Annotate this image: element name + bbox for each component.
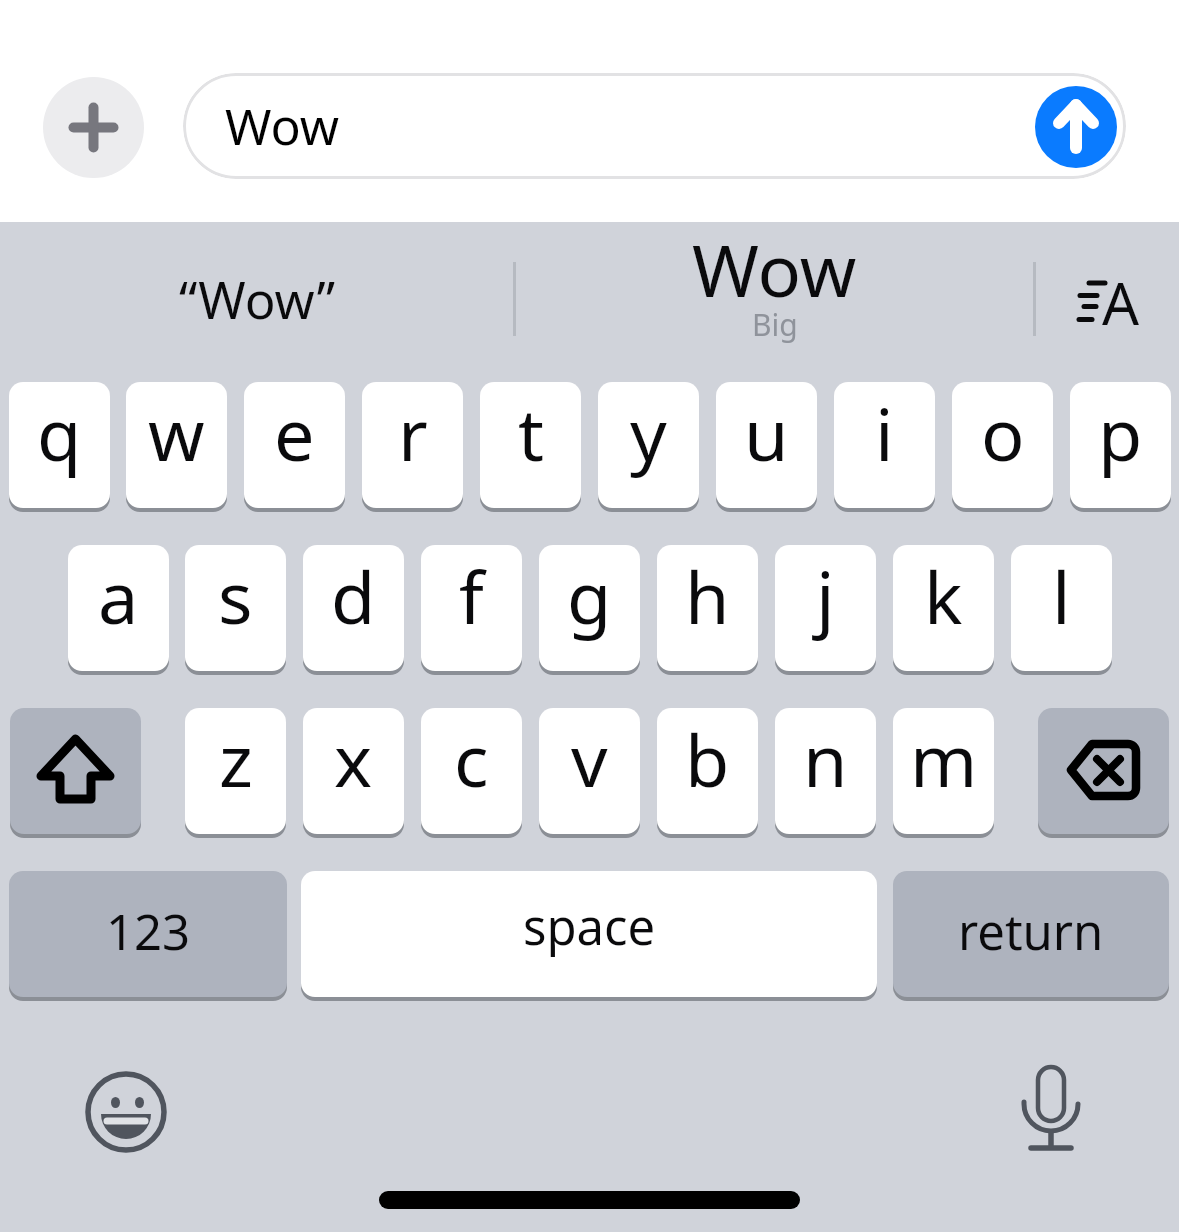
staticText: Wow [692, 220, 857, 318]
button[interactable]: w [126, 382, 227, 508]
staticText: 123 [106, 898, 191, 965]
staticText: Big [752, 304, 798, 345]
staticText: e [274, 384, 315, 482]
staticText: k [924, 547, 963, 645]
staticText: x [334, 710, 373, 808]
staticText: y [630, 384, 667, 482]
button[interactable] [1013, 1058, 1093, 1153]
staticText: m [910, 710, 978, 808]
button[interactable]: c [421, 708, 522, 834]
staticText: p [1098, 384, 1143, 482]
staticText: b [685, 710, 730, 808]
button[interactable]: p [1070, 382, 1171, 508]
staticText: u [744, 384, 789, 482]
button[interactable]: return [893, 871, 1169, 997]
button[interactable] [84, 1070, 168, 1154]
button[interactable]: Wow [183, 73, 1126, 179]
staticText: o [981, 384, 1025, 482]
button[interactable]: v [539, 708, 640, 834]
button[interactable]: 123 [9, 871, 287, 997]
button[interactable]: s [185, 545, 286, 671]
button[interactable]: m [893, 708, 994, 834]
button[interactable]: f [421, 545, 522, 671]
staticText: d [331, 547, 376, 645]
button[interactable]: t [480, 382, 581, 508]
staticText: “Wow” [179, 264, 336, 333]
button[interactable]: g [539, 545, 640, 671]
button[interactable] [1038, 708, 1169, 834]
button[interactable]: j [775, 545, 876, 671]
staticText: q [37, 384, 82, 482]
staticText: w [148, 384, 205, 482]
staticText: i [875, 384, 894, 482]
staticText: v [571, 710, 608, 808]
staticText: j [816, 547, 835, 645]
staticText: a [98, 547, 139, 645]
staticText: l [1052, 547, 1071, 645]
staticText: r [398, 384, 428, 482]
staticText: c [454, 710, 489, 808]
button[interactable]: d [303, 545, 404, 671]
staticText: f [459, 547, 484, 645]
button[interactable]: i [834, 382, 935, 508]
button[interactable]: z [185, 708, 286, 834]
button[interactable]: k [893, 545, 994, 671]
button[interactable]: A [1034, 232, 1179, 372]
button[interactable]: r [362, 382, 463, 508]
staticText: s [218, 547, 253, 645]
button[interactable]: o [952, 382, 1053, 508]
button[interactable]: e [244, 382, 345, 508]
button[interactable] [1035, 86, 1117, 168]
button[interactable]: space [301, 871, 877, 997]
staticText: n [803, 710, 848, 808]
button[interactable]: x [303, 708, 404, 834]
staticText: Wow [225, 92, 340, 160]
staticText: z [219, 710, 253, 808]
staticText: t [518, 384, 544, 482]
button[interactable]: b [657, 708, 758, 834]
staticText: g [567, 547, 612, 645]
button[interactable]: q [9, 382, 110, 508]
button[interactable] [515, 222, 1034, 372]
button[interactable]: a [68, 545, 169, 671]
button[interactable]: l [1011, 545, 1112, 671]
button[interactable] [43, 77, 144, 178]
button[interactable]: y [598, 382, 699, 508]
staticText: h [685, 547, 730, 645]
button[interactable]: “Wow” [0, 228, 515, 368]
button[interactable]: u [716, 382, 817, 508]
staticText: space [523, 893, 656, 960]
staticText: return [958, 898, 1104, 965]
button[interactable] [10, 708, 141, 834]
button[interactable]: n [775, 708, 876, 834]
button[interactable]: h [657, 545, 758, 671]
staticText: A [1102, 263, 1140, 342]
